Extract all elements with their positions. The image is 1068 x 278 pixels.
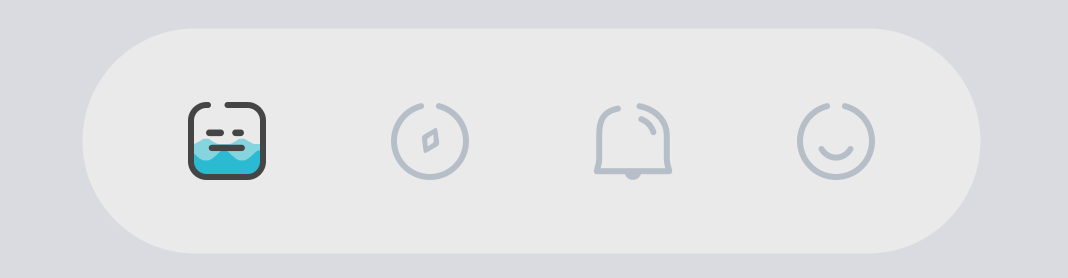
- button[interactable]: Hydration: [125, 28, 328, 253]
- button[interactable]: Reminders: [531, 28, 734, 253]
- button[interactable]: Profile: [734, 28, 937, 253]
- button[interactable]: Explore: [328, 28, 531, 253]
